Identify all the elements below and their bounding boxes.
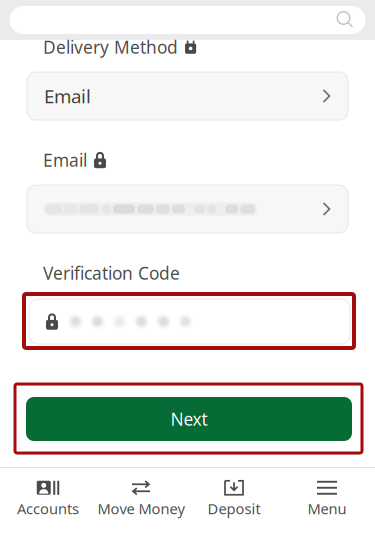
staticText: Email [44,84,91,108]
staticText: Move Money [97,499,184,518]
button[interactable]: Menu [280,469,373,534]
staticText: Menu [307,499,346,518]
staticText: Accounts [17,499,79,518]
button[interactable]: Accounts [1,469,94,534]
button[interactable]: Move Money [94,469,187,534]
button[interactable]: Deposit [187,469,280,534]
staticText: Delivery Method [43,35,178,58]
button[interactable]: Email [27,72,348,120]
button[interactable] [27,185,348,233]
staticText: Verification Code [43,261,180,284]
button[interactable]: Next [26,397,352,441]
staticText: Deposit [207,499,260,518]
staticText: Email [43,148,87,171]
staticText: Next [170,407,207,430]
